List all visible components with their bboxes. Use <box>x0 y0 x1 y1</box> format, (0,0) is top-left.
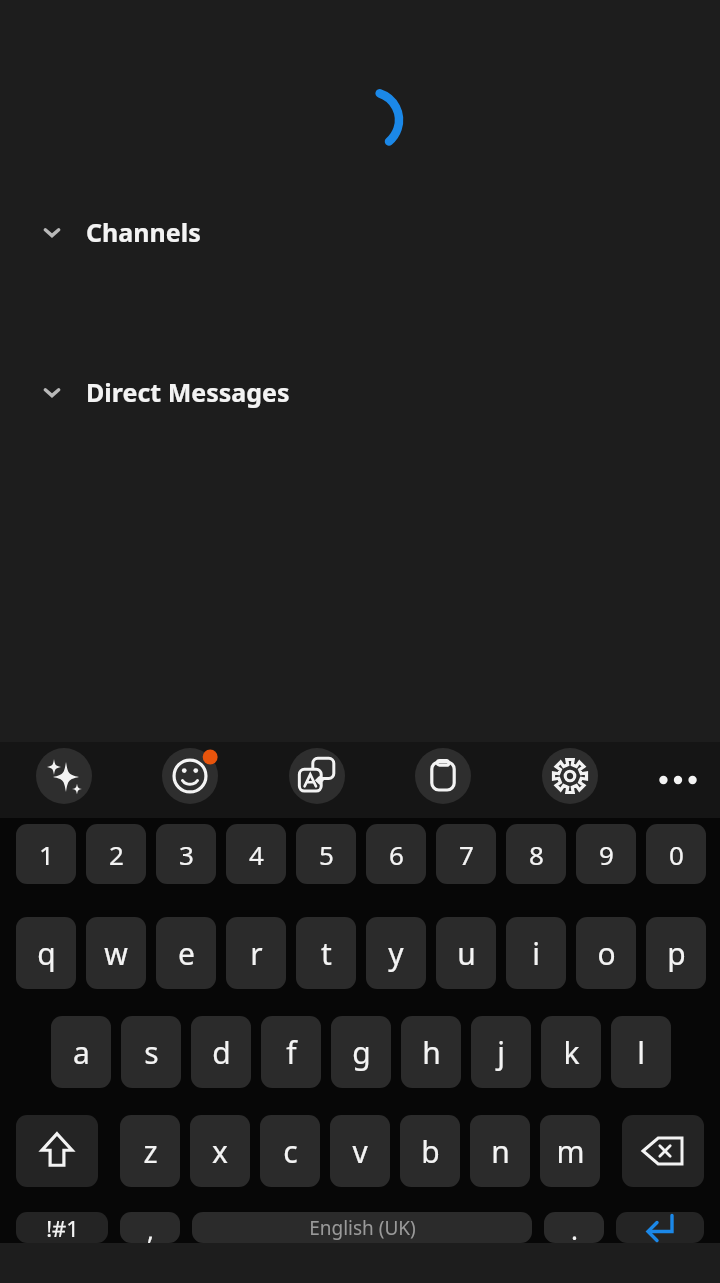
button[interactable]: 9 <box>576 824 636 884</box>
button[interactable]: , <box>120 1212 180 1243</box>
button[interactable]: 3 <box>156 824 216 884</box>
staticText: 0 <box>669 837 684 872</box>
staticText: p <box>667 933 686 974</box>
button[interactable]: i <box>506 917 566 989</box>
button[interactable]: g <box>331 1016 391 1088</box>
staticText: b <box>421 1131 440 1172</box>
staticText: 1 <box>39 837 54 872</box>
staticText: Channels <box>86 215 201 249</box>
button[interactable]: 4 <box>226 824 286 884</box>
staticText: e <box>178 933 195 974</box>
button[interactable]: Enter <box>616 1212 704 1243</box>
button[interactable]: Backspace <box>622 1115 704 1187</box>
button[interactable]: 2 <box>86 824 146 884</box>
button[interactable]: 6 <box>366 824 426 884</box>
button[interactable]: f <box>261 1016 321 1088</box>
button[interactable]: p <box>646 917 706 989</box>
staticText: v <box>352 1131 368 1172</box>
staticText: f <box>286 1032 297 1073</box>
staticText: . <box>571 1212 578 1243</box>
button[interactable]: k <box>541 1016 601 1088</box>
button[interactable]: !#1 <box>16 1212 108 1243</box>
button[interactable]: q <box>16 917 76 989</box>
button[interactable]: w <box>86 917 146 989</box>
button[interactable]: v <box>330 1115 390 1187</box>
button[interactable]: Channels <box>0 202 720 262</box>
staticText: c <box>283 1131 298 1172</box>
staticText: 5 <box>319 837 334 872</box>
staticText: j <box>497 1032 505 1073</box>
staticText: u <box>457 933 476 974</box>
button[interactable]: a <box>51 1016 111 1088</box>
staticText: 9 <box>599 837 614 872</box>
button[interactable]: d <box>191 1016 251 1088</box>
staticText: 6 <box>389 837 404 872</box>
button[interactable]: e <box>156 917 216 989</box>
staticText: English (UK) <box>309 1215 416 1241</box>
staticText: d <box>212 1032 231 1073</box>
button[interactable]: j <box>471 1016 531 1088</box>
staticText: k <box>563 1032 580 1073</box>
button[interactable]: y <box>366 917 426 989</box>
button[interactable]: AI assist <box>36 748 92 804</box>
button[interactable]: z <box>120 1115 180 1187</box>
button[interactable]: . <box>544 1212 604 1243</box>
staticText: o <box>597 933 616 974</box>
staticText: s <box>144 1032 159 1073</box>
staticText: n <box>491 1131 510 1172</box>
button[interactable]: Shift <box>16 1115 98 1187</box>
staticText: r <box>250 933 263 974</box>
button[interactable]: m <box>540 1115 600 1187</box>
button[interactable]: Direct Messages <box>0 362 720 422</box>
button[interactable]: c <box>260 1115 320 1187</box>
button[interactable]: 1 <box>16 824 76 884</box>
button[interactable]: English (UK) <box>192 1212 532 1243</box>
button[interactable]: s <box>121 1016 181 1088</box>
button[interactable]: Settings <box>542 748 598 804</box>
staticText: 7 <box>459 837 474 872</box>
button[interactable]: More options <box>650 762 706 798</box>
button[interactable]: Translate <box>289 748 345 804</box>
staticText: !#1 <box>46 1213 79 1243</box>
button[interactable]: o <box>576 917 636 989</box>
button[interactable]: u <box>436 917 496 989</box>
staticText: y <box>388 933 404 974</box>
button[interactable]: Emoji <box>162 748 218 804</box>
button[interactable]: h <box>401 1016 461 1088</box>
staticText: h <box>422 1032 441 1073</box>
staticText: Direct Messages <box>86 375 290 409</box>
staticText: x <box>212 1131 228 1172</box>
staticText: , <box>147 1212 154 1243</box>
staticText: 2 <box>109 837 124 872</box>
button[interactable]: 5 <box>296 824 356 884</box>
staticText: t <box>321 933 332 974</box>
button[interactable]: t <box>296 917 356 989</box>
staticText: i <box>532 933 540 974</box>
button[interactable]: Clipboard <box>415 748 471 804</box>
staticText: m <box>556 1131 585 1172</box>
button[interactable]: r <box>226 917 286 989</box>
button[interactable]: n <box>470 1115 530 1187</box>
button[interactable]: 7 <box>436 824 496 884</box>
staticText: a <box>73 1032 90 1073</box>
staticText: 4 <box>249 837 264 872</box>
staticText: l <box>637 1032 645 1073</box>
button[interactable]: 0 <box>646 824 706 884</box>
button[interactable]: l <box>611 1016 671 1088</box>
staticText: z <box>143 1131 158 1172</box>
staticText: w <box>104 933 128 974</box>
staticText: 3 <box>179 837 194 872</box>
button[interactable]: x <box>190 1115 250 1187</box>
staticText: g <box>352 1032 371 1073</box>
button[interactable]: 8 <box>506 824 566 884</box>
staticText: q <box>37 933 56 974</box>
button[interactable]: b <box>400 1115 460 1187</box>
staticText: 8 <box>529 837 544 872</box>
